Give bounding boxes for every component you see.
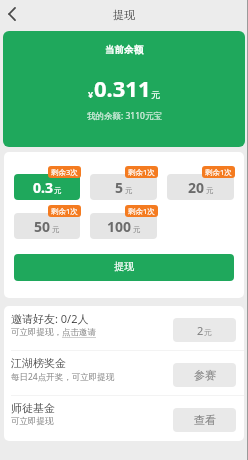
staticText: 元	[125, 186, 133, 195]
staticText: 查看	[194, 413, 216, 427]
button[interactable]: Back	[0, 0, 26, 29]
staticText: 剩余3次	[51, 167, 78, 177]
staticText: 100	[107, 217, 132, 236]
staticText: 剩余1次	[128, 167, 155, 177]
staticText: 20	[188, 178, 205, 197]
staticText: 0.311	[94, 73, 151, 103]
staticText: 0.3	[33, 178, 53, 197]
staticText: 邀请好友: 0/2人	[11, 311, 89, 326]
staticText: 元	[133, 225, 141, 234]
button[interactable]: 江湖榜奖金	[11, 351, 236, 395]
staticText: 剩余1次	[205, 167, 232, 177]
button[interactable]: 20	[167, 174, 234, 200]
staticText: 2	[197, 323, 204, 338]
staticText: 可立即提现	[11, 416, 54, 427]
staticText: 可立即提现，点击邀请	[11, 327, 96, 338]
staticText: 元	[151, 89, 160, 100]
staticText: 我的余额: 3110元宝	[87, 110, 162, 122]
staticText: 提现	[113, 8, 135, 22]
button[interactable]: 提现	[14, 254, 234, 281]
button[interactable]: 0.3	[14, 174, 80, 200]
button[interactable]: 邀请好友: 0/2人	[11, 306, 236, 350]
button[interactable]: 50	[14, 213, 80, 239]
button[interactable]: 2	[173, 318, 236, 342]
staticText: 每日24点开奖，可立即提现	[11, 371, 115, 383]
staticText: 元	[204, 327, 212, 337]
staticText: 剩余1次	[51, 206, 78, 216]
button[interactable]: 100	[90, 213, 157, 239]
staticText: 剩余1次	[128, 206, 155, 216]
staticText: ¥	[88, 88, 94, 100]
button[interactable]: 查看	[173, 408, 236, 432]
staticText: 江湖榜奖金	[11, 356, 66, 370]
staticText: 当前余额	[105, 44, 143, 56]
staticText: 50	[34, 217, 51, 236]
button[interactable]: 参赛	[173, 363, 236, 387]
button[interactable]: 师徒基金	[11, 396, 236, 440]
staticText: 师徒基金	[11, 401, 55, 415]
staticText: 参赛	[194, 368, 216, 382]
staticText: 5	[115, 178, 124, 197]
staticText: 元	[206, 186, 214, 195]
staticText: 元	[54, 186, 62, 195]
staticText: 元	[52, 225, 60, 234]
button[interactable]: 5	[90, 174, 157, 200]
staticText: 提现	[114, 260, 134, 273]
